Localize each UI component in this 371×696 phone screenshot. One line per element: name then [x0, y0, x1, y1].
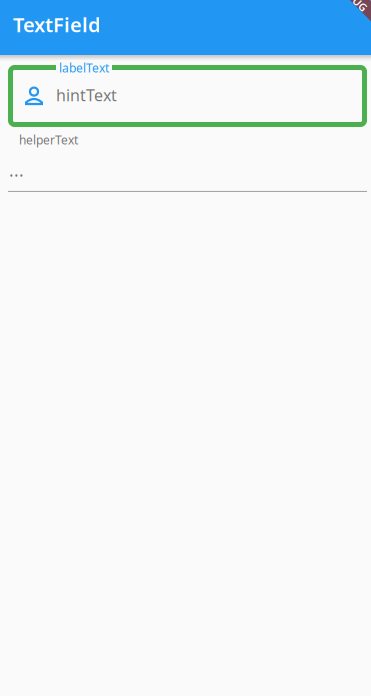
- staticText: ...: [9, 158, 24, 181]
- staticText: labelText: [59, 60, 109, 76]
- staticText: DEBUG: [356, 0, 371, 16]
- button[interactable]: More options: [0, 164, 24, 176]
- staticText: hintText: [56, 84, 117, 106]
- button[interactable]: hintText: [8, 65, 367, 127]
- staticText: helperText: [19, 132, 78, 148]
- staticText: TextField: [13, 11, 101, 38]
